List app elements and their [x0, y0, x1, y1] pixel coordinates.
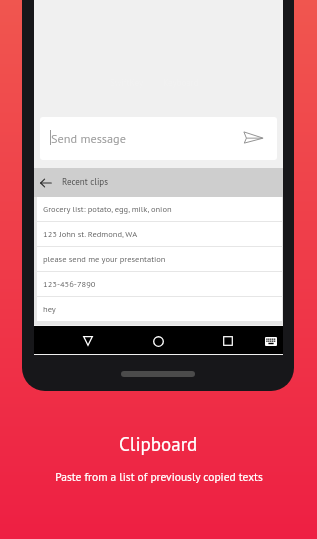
button[interactable]: Home: [144, 327, 172, 355]
button[interactable]: Send message: [40, 117, 277, 160]
staticText: Grocery list: potato, egg, milk, onion: [43, 203, 172, 214]
staticText: Send message: [51, 130, 126, 146]
button[interactable]: Recent apps: [214, 327, 242, 355]
staticText: please send me your presentation: [43, 253, 166, 264]
staticText: hey: [43, 303, 56, 314]
button[interactable]: Back: [74, 327, 102, 355]
button[interactable]: Back: [34, 168, 283, 197]
button[interactable]: Send: [239, 127, 267, 148]
staticText: Clipboard: [119, 432, 198, 457]
staticText: 123 John st. Redmond, WA: [43, 228, 138, 239]
button[interactable]: please send me your presentation: [37, 247, 282, 271]
other: Back: [40, 177, 52, 189]
button[interactable]: Grocery list: potato, egg, milk, onion: [37, 197, 282, 221]
staticText: Paste from a list of previously copied t…: [55, 469, 263, 484]
button[interactable]: hey: [37, 297, 282, 321]
button[interactable]: 123 John st. Redmond, WA: [37, 222, 282, 246]
staticText: 123-456-7890: [43, 278, 96, 289]
button[interactable]: Switch keyboard: [257, 327, 285, 355]
staticText: Recent clips: [62, 176, 108, 188]
button[interactable]: 123-456-7890: [37, 272, 282, 296]
